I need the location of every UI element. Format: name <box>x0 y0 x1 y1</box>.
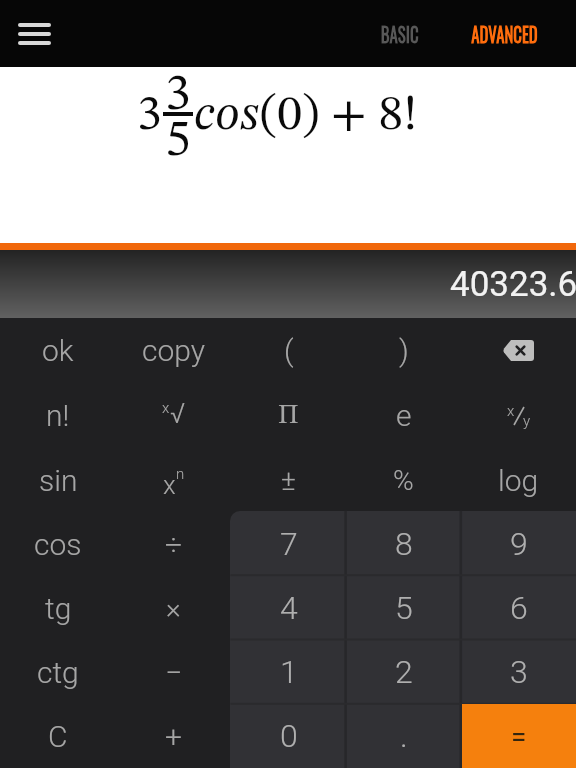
staticText: 5 <box>165 115 191 167</box>
button[interactable]: 7 <box>231 512 346 576</box>
button[interactable] <box>461 318 576 383</box>
button[interactable]: × <box>116 576 231 640</box>
staticText: 5 <box>395 589 413 627</box>
button[interactable]: ( <box>231 318 346 383</box>
button[interactable]: log <box>461 448 576 512</box>
button[interactable]: 9 <box>461 512 576 576</box>
staticText: 3 <box>510 653 528 691</box>
button[interactable]: 5 <box>346 576 461 640</box>
staticText: ctg <box>37 655 79 690</box>
staticText: − <box>165 655 183 690</box>
staticText: ADVANCED <box>471 18 538 49</box>
staticText: × <box>166 592 181 625</box>
staticText: n! <box>46 398 70 433</box>
button[interactable]: 2 <box>346 640 461 704</box>
staticText: ) <box>399 333 409 368</box>
staticText: e <box>396 398 412 433</box>
staticText: 9 <box>510 525 528 563</box>
staticText: 4 <box>280 589 298 627</box>
button[interactable]: sin <box>0 448 116 512</box>
button[interactable]: 0 <box>231 704 346 768</box>
button[interactable]: − <box>116 640 231 704</box>
staticText: ± <box>281 464 296 497</box>
staticText: 0 <box>280 717 298 755</box>
staticText: ok <box>42 333 74 368</box>
staticText: x <box>163 470 176 500</box>
button[interactable]: 3 <box>461 640 576 704</box>
staticText: Π <box>278 402 299 429</box>
staticText: 7 <box>280 525 298 563</box>
button[interactable]: e <box>346 383 461 448</box>
button[interactable]: 1 <box>231 640 346 704</box>
staticText: % <box>393 464 414 497</box>
staticText: ÷ <box>165 527 183 562</box>
button[interactable]: = <box>461 704 576 768</box>
staticText: log <box>498 463 539 498</box>
staticText: 40323.6 <box>450 264 576 305</box>
staticText: ( <box>284 333 294 368</box>
button[interactable]: 6 <box>461 576 576 640</box>
staticText: . <box>400 717 408 755</box>
button[interactable]: x <box>116 448 231 512</box>
button[interactable]: 4 <box>231 576 346 640</box>
button[interactable]: BASIC <box>376 18 424 49</box>
button[interactable]: ÷ <box>116 512 231 576</box>
button[interactable]: ) <box>346 318 461 383</box>
staticText: √ <box>170 397 186 430</box>
button[interactable]: C <box>0 704 116 768</box>
button[interactable]: ctg <box>0 640 116 704</box>
button[interactable]: Π <box>231 383 346 448</box>
staticText: cos <box>34 527 82 562</box>
button[interactable]: 8 <box>346 512 461 576</box>
staticText: x <box>507 402 515 420</box>
staticText: copy <box>142 333 206 368</box>
button[interactable]: + <box>116 704 231 768</box>
staticText: BASIC <box>381 18 419 49</box>
button[interactable]: % <box>346 448 461 512</box>
staticText: = <box>511 720 527 753</box>
button[interactable] <box>10 10 58 58</box>
staticText: (0) + 8! <box>260 91 418 141</box>
button[interactable]: ± <box>231 448 346 512</box>
button[interactable]: cos <box>0 512 116 576</box>
button[interactable]: n! <box>0 383 116 448</box>
staticText: x <box>162 399 170 417</box>
button[interactable]: tg <box>0 576 116 640</box>
staticText: C <box>48 719 68 754</box>
staticText: 1 <box>280 653 298 691</box>
button[interactable]: copy <box>116 318 231 383</box>
staticText: 3 <box>165 69 191 121</box>
staticText: n <box>176 465 185 483</box>
staticText: y <box>523 412 531 430</box>
staticText: + <box>165 719 182 754</box>
staticText: 8 <box>395 525 413 563</box>
staticText: sin <box>39 463 78 498</box>
staticText: 3 <box>137 91 162 141</box>
staticText: tg <box>45 591 72 626</box>
button[interactable]: x <box>116 383 231 448</box>
staticText: 6 <box>510 589 528 627</box>
staticText: 2 <box>395 653 413 691</box>
button[interactable]: . <box>346 704 461 768</box>
staticText: cos <box>194 91 260 141</box>
button[interactable]: ADVANCED <box>463 18 546 49</box>
button[interactable]: ok <box>0 318 116 383</box>
button[interactable]: x <box>461 383 576 448</box>
